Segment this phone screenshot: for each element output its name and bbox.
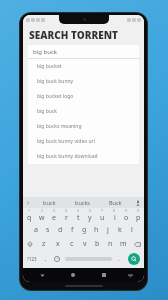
staticText: w <box>39 213 45 223</box>
button[interactable]: Voice input <box>132 197 144 208</box>
button[interactable]: j <box>102 223 114 237</box>
button[interactable]: big bucket logo <box>28 89 139 104</box>
button[interactable]: buck <box>32 197 66 208</box>
staticText: 5 <box>77 208 80 213</box>
button[interactable]: d <box>54 223 66 237</box>
button[interactable]: 7 <box>96 208 108 223</box>
button[interactable]: big bucket <box>28 59 139 74</box>
button[interactable]: b <box>91 237 104 251</box>
button[interactable]: f <box>66 223 78 237</box>
button[interactable]: l <box>126 223 138 237</box>
staticText: 0 <box>137 208 140 213</box>
button[interactable]: Recents <box>97 268 111 282</box>
staticText: t <box>77 213 80 223</box>
button[interactable]: ?123 <box>23 251 41 267</box>
staticText: s <box>46 225 50 235</box>
staticText: i <box>114 213 116 223</box>
staticText: x <box>56 239 60 249</box>
button[interactable]: k <box>114 223 126 237</box>
button[interactable]: Search <box>128 253 140 265</box>
staticText: big buck bunny <box>37 78 74 85</box>
button[interactable]: h <box>90 223 102 237</box>
button[interactable]: a <box>29 223 42 237</box>
staticText: big buck bunny download <box>37 153 98 160</box>
button[interactable]: m <box>117 237 130 251</box>
staticText: p <box>136 213 141 223</box>
staticText: e <box>52 213 56 223</box>
button[interactable]: 8 <box>108 208 120 223</box>
button[interactable]: c <box>65 237 78 251</box>
button[interactable]: big buck bunny download <box>28 149 139 164</box>
staticText: o <box>124 213 129 223</box>
staticText: ?123 <box>27 256 37 262</box>
staticText: d <box>58 225 63 235</box>
staticText: 8 <box>113 208 116 213</box>
staticText: v <box>83 239 87 249</box>
button[interactable]: x <box>51 237 65 251</box>
staticText: 7 <box>101 208 104 213</box>
staticText: 1 <box>28 208 31 213</box>
button[interactable]: g <box>78 223 90 237</box>
button[interactable]: 1 <box>23 208 36 223</box>
staticText: c <box>70 239 74 249</box>
button[interactable]: big bucks meaning <box>28 119 139 134</box>
staticText: SEARCH TORRENT <box>29 28 118 42</box>
button[interactable]: s <box>42 223 54 237</box>
staticText: Buck <box>109 199 122 206</box>
button[interactable]: 3 <box>48 208 60 223</box>
button[interactable]: 5 <box>72 208 84 223</box>
button[interactable]: . <box>114 251 124 267</box>
button[interactable]: Shift <box>23 237 37 251</box>
button[interactable]: v <box>78 237 91 251</box>
button[interactable]: Home <box>66 268 80 282</box>
button[interactable]: Back <box>35 268 49 282</box>
staticText: h <box>94 225 99 235</box>
button[interactable]: big buck <box>28 45 139 58</box>
staticText: k <box>118 225 122 235</box>
staticText: 3 <box>53 208 56 213</box>
staticText: 4 <box>65 208 68 213</box>
staticText: 9 <box>125 208 128 213</box>
staticText: z <box>42 239 46 249</box>
staticText: bucks <box>75 199 90 206</box>
staticText: big buck <box>37 108 57 115</box>
staticText: b <box>95 239 100 249</box>
button[interactable]: Hide keyboard <box>124 269 136 281</box>
staticText: 2 <box>41 208 44 213</box>
staticText: 6 <box>89 208 92 213</box>
button[interactable]: 4 <box>60 208 72 223</box>
staticText: r <box>65 213 68 223</box>
staticText: q <box>27 213 32 223</box>
staticText: g <box>82 225 87 235</box>
button[interactable]: 0 <box>132 208 144 223</box>
button[interactable]: 2 <box>36 208 48 223</box>
staticText: j <box>107 225 109 235</box>
button[interactable]: , <box>41 251 51 267</box>
staticText: y <box>88 213 92 223</box>
button[interactable]: 6 <box>84 208 96 223</box>
staticText: l <box>131 225 133 235</box>
staticText: n <box>108 239 113 249</box>
button[interactable]: Backspace <box>130 237 144 251</box>
button[interactable]: More suggestions <box>23 197 32 208</box>
staticText: big buck <box>33 48 57 56</box>
staticText: big buck bunny video url <box>37 138 95 145</box>
staticText: big bucket logo <box>37 93 74 100</box>
button[interactable]: big buck <box>28 104 139 119</box>
staticText: buck <box>43 199 56 206</box>
staticText: f <box>71 225 74 235</box>
button[interactable]: n <box>104 237 117 251</box>
button[interactable]: Buck <box>99 197 132 208</box>
button[interactable]: z <box>37 237 51 251</box>
staticText: , <box>45 255 47 263</box>
staticText: m <box>120 239 127 249</box>
staticText: big bucks meaning <box>37 123 82 130</box>
button[interactable]: big buck bunny <box>28 74 139 89</box>
button[interactable]: bucks <box>66 197 99 208</box>
button[interactable]: 9 <box>120 208 132 223</box>
button[interactable]: Emoji <box>51 251 63 267</box>
staticText: a <box>34 225 38 235</box>
staticText: big bucket <box>37 63 62 70</box>
button[interactable]: big buck bunny video url <box>28 134 139 149</box>
